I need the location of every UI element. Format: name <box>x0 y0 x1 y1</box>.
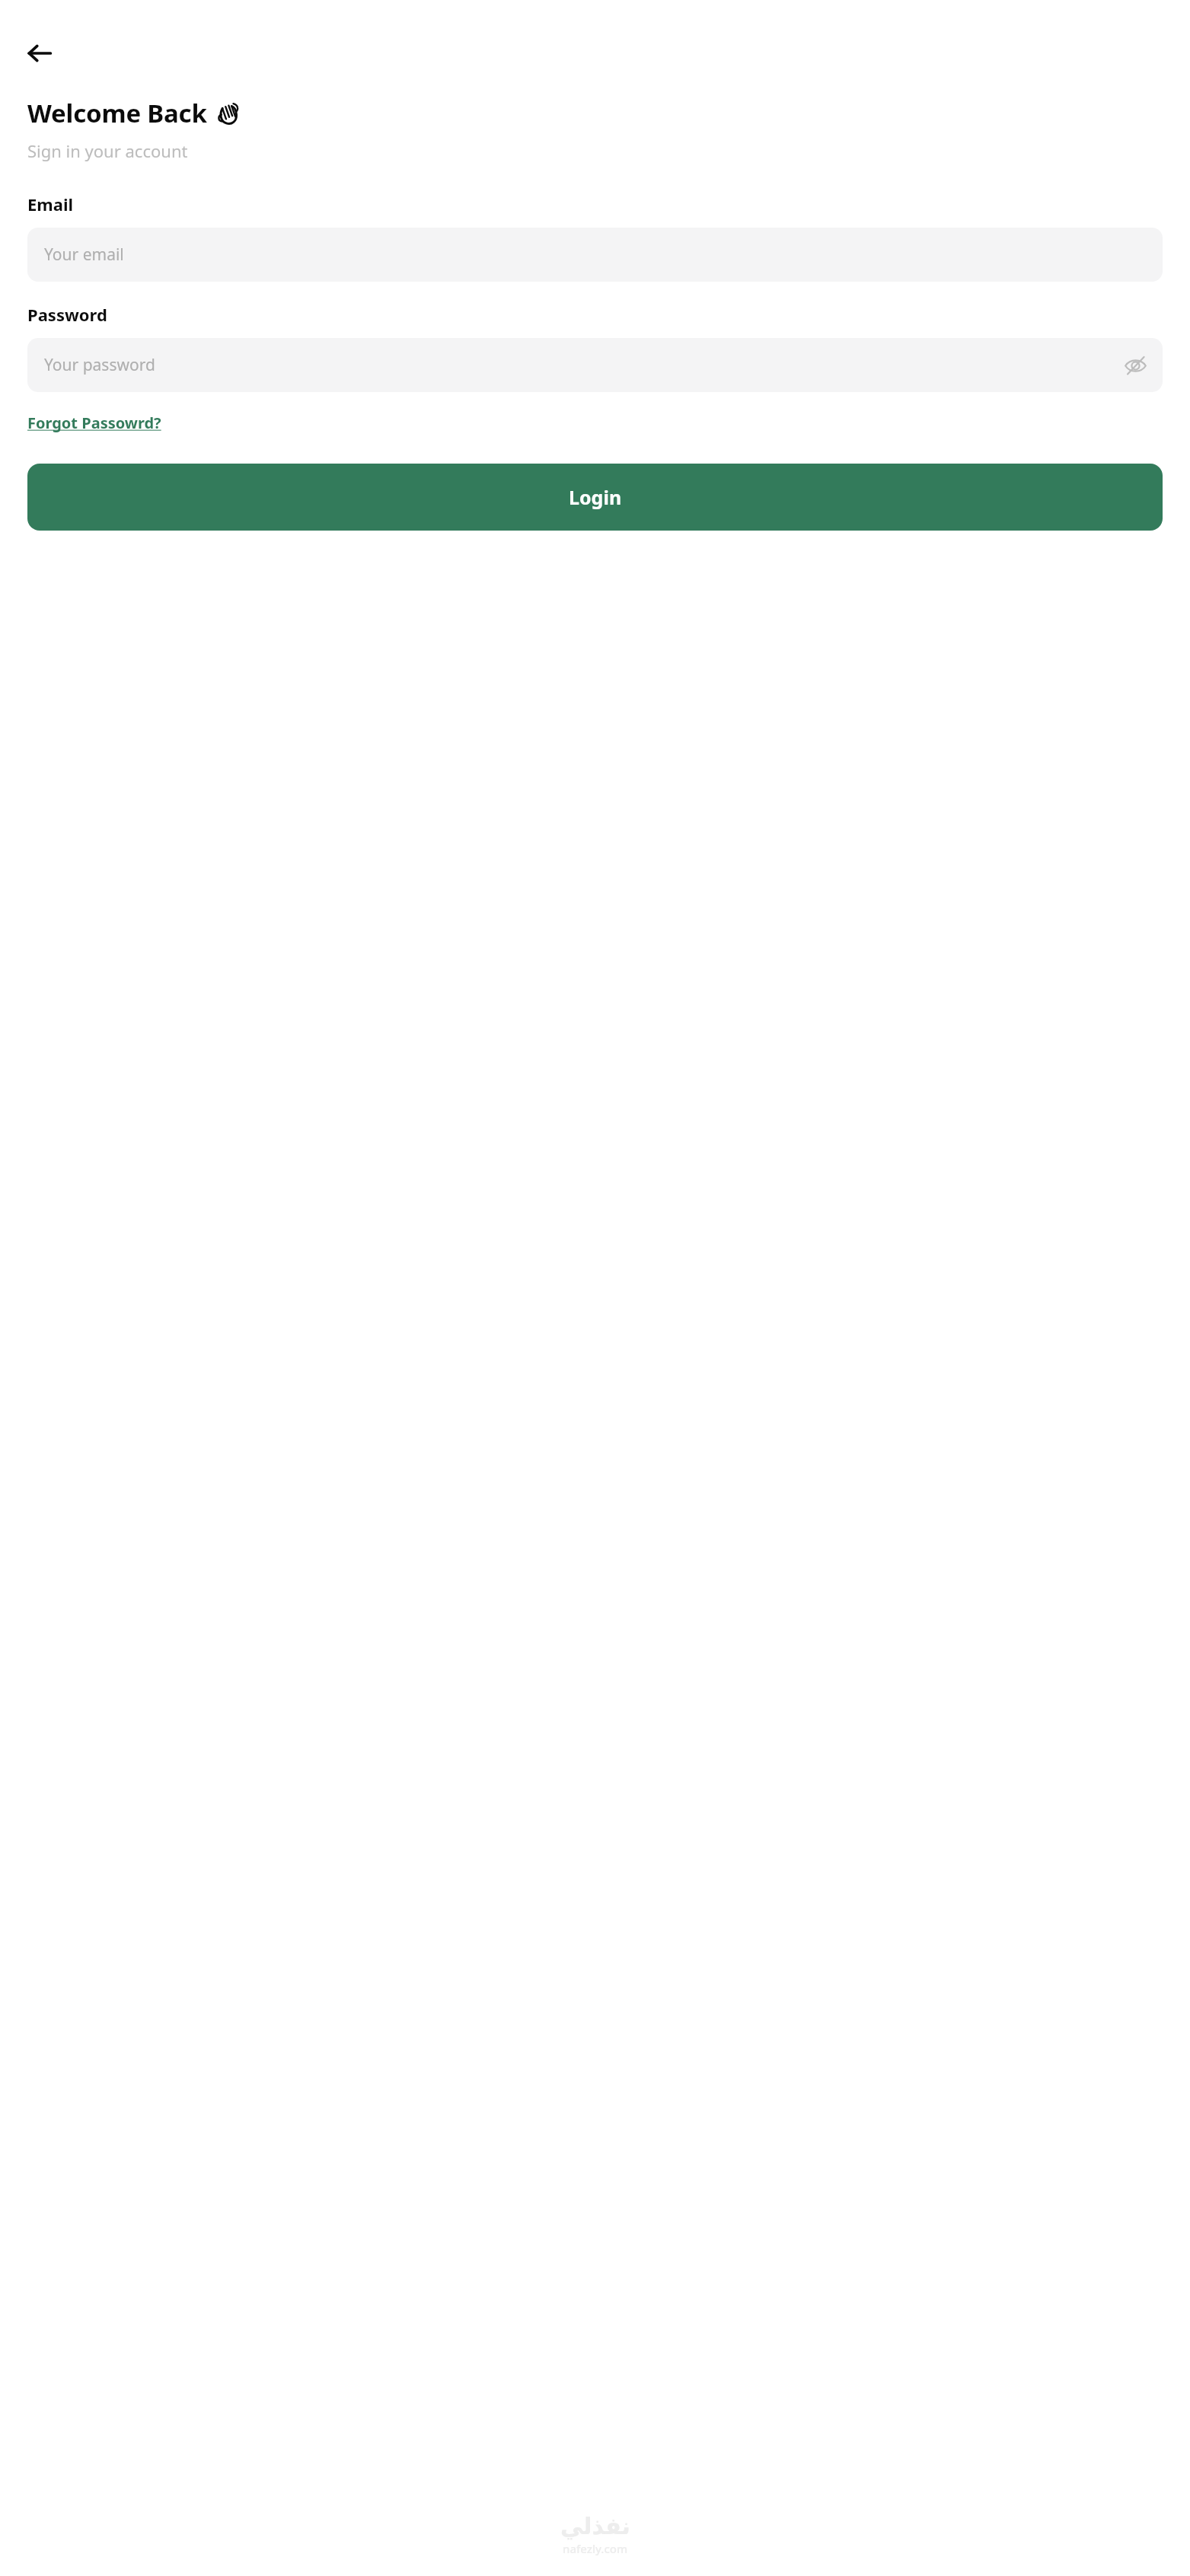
staticText: Your email <box>44 244 124 266</box>
staticText: Your password <box>44 354 155 376</box>
staticText: Password <box>27 303 107 326</box>
staticText: Login <box>569 484 622 510</box>
staticText: nafezly.com <box>563 2541 628 2556</box>
button[interactable]: Your email <box>27 228 1163 282</box>
staticText: Sign in your account <box>27 139 188 162</box>
staticText: Forgot Passowrd? <box>27 413 161 433</box>
staticText: Email <box>27 193 74 215</box>
button[interactable]: Login <box>27 464 1163 531</box>
button[interactable]: Back <box>27 35 64 72</box>
staticText: نفذلي <box>560 2513 630 2539</box>
staticText: Welcome Back <box>27 96 207 130</box>
button[interactable]: Show password <box>1118 349 1152 382</box>
button[interactable]: Your password <box>27 338 1163 392</box>
button[interactable]: Forgot Passowrd? <box>27 413 161 433</box>
